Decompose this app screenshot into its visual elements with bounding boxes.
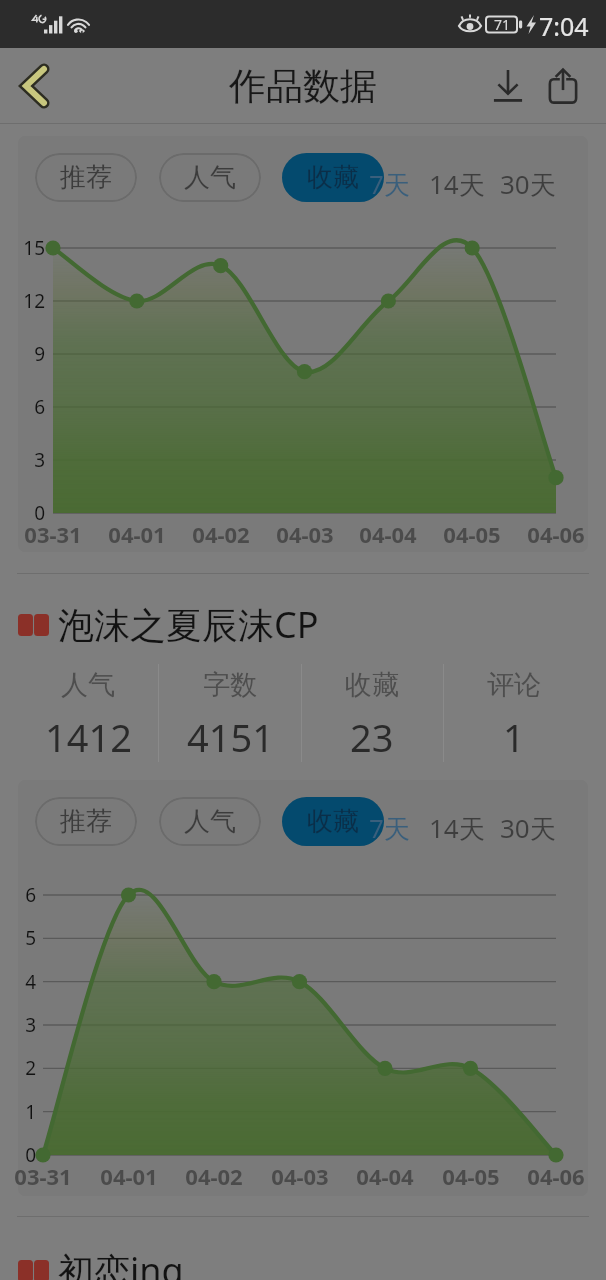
staticText: 30天 xyxy=(500,166,556,202)
staticText: 6 xyxy=(34,394,45,420)
staticText: 04-03 xyxy=(271,1161,329,1191)
button[interactable]: 14天 xyxy=(429,166,485,202)
staticText: 5 xyxy=(25,925,36,951)
button[interactable]: 7天 xyxy=(369,810,410,846)
staticText: 04-04 xyxy=(359,519,417,549)
staticText: 收藏 xyxy=(345,668,399,702)
staticText: 泡沫之夏辰沫CP xyxy=(58,600,319,649)
button[interactable]: 推荐 xyxy=(35,797,137,846)
button[interactable]: 7天 xyxy=(369,166,410,202)
staticText: 4 xyxy=(25,969,36,995)
staticText: 04-03 xyxy=(276,519,334,549)
button[interactable]: 人气 xyxy=(159,797,261,846)
staticText: 9 xyxy=(34,341,45,367)
staticText: 04-04 xyxy=(356,1161,414,1191)
staticText: 人气 xyxy=(61,668,115,702)
button[interactable]: 30天 xyxy=(500,810,556,846)
staticText: 3 xyxy=(25,1012,36,1038)
staticText: 04-02 xyxy=(192,519,250,549)
staticText: 04-06 xyxy=(527,519,585,549)
staticText: 04-01 xyxy=(108,519,166,549)
staticText: 作品数据 xyxy=(229,63,377,110)
staticText: 0 xyxy=(25,1142,36,1168)
staticText: 71 xyxy=(494,15,511,34)
staticText: 收藏 xyxy=(307,805,359,838)
staticText: 推荐 xyxy=(60,805,112,838)
staticText: 14天 xyxy=(429,810,485,846)
staticText: 1412 xyxy=(45,711,132,763)
staticText: 04-02 xyxy=(185,1161,243,1191)
button[interactable]: Download xyxy=(478,48,538,124)
staticText: 2 xyxy=(25,1055,36,1081)
staticText: 7天 xyxy=(369,810,410,846)
staticText: 1 xyxy=(503,711,525,763)
button[interactable]: 30天 xyxy=(500,166,556,202)
staticText: 人气 xyxy=(184,161,236,194)
staticText: 04-01 xyxy=(100,1161,158,1191)
staticText: 30天 xyxy=(500,810,556,846)
button[interactable]: 字数 xyxy=(159,660,301,766)
staticText: 6 xyxy=(25,882,36,908)
button[interactable]: 推荐 xyxy=(35,153,137,202)
staticText: 初恋ing xyxy=(58,1246,184,1280)
staticText: 15 xyxy=(23,235,45,261)
staticText: 7天 xyxy=(369,166,410,202)
staticText: 12 xyxy=(23,288,45,314)
staticText: 推荐 xyxy=(60,161,112,194)
staticText: 评论 xyxy=(487,668,541,702)
staticText: 4151 xyxy=(187,711,274,763)
staticText: 04-06 xyxy=(527,1161,585,1191)
staticText: 3 xyxy=(34,447,45,473)
staticText: 04-05 xyxy=(442,1161,500,1191)
button[interactable]: Share xyxy=(533,48,593,124)
button[interactable]: 评论 xyxy=(443,660,585,766)
staticText: 1 xyxy=(25,1099,36,1125)
staticText: 字数 xyxy=(203,668,257,702)
staticText: 03-31 xyxy=(14,1161,72,1191)
staticText: 7:04 xyxy=(539,9,589,43)
button[interactable]: 收藏 xyxy=(282,797,384,846)
staticText: 03-31 xyxy=(24,519,82,549)
staticText: 23 xyxy=(350,711,394,763)
button[interactable]: 14天 xyxy=(429,810,485,846)
button[interactable]: 人气 xyxy=(159,153,261,202)
button[interactable]: 收藏 xyxy=(282,153,384,202)
staticText: 收藏 xyxy=(307,161,359,194)
staticText: 0 xyxy=(34,500,45,526)
button[interactable]: 收藏 xyxy=(301,660,443,766)
staticText: 人气 xyxy=(184,805,236,838)
button[interactable]: 人气 xyxy=(17,660,159,766)
staticText: 04-05 xyxy=(443,519,501,549)
staticText: 14天 xyxy=(429,166,485,202)
button[interactable]: Back xyxy=(0,48,70,124)
